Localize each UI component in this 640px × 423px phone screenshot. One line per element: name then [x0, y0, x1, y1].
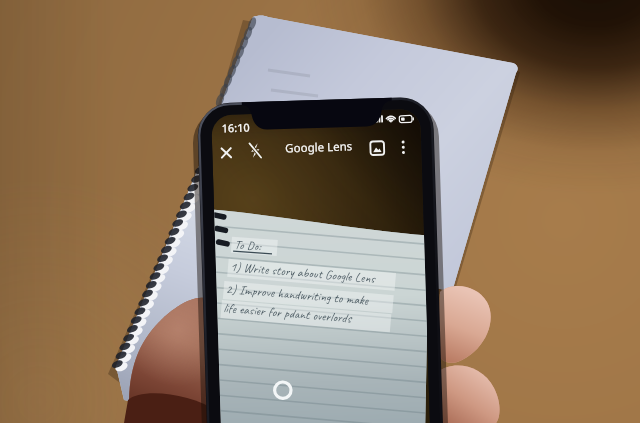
button[interactable]: More options — [396, 134, 422, 160]
button[interactable]: Flash off — [246, 134, 272, 160]
button[interactable]: Search with camera — [266, 374, 296, 404]
button[interactable]: Pick image from gallery — [366, 134, 392, 160]
button[interactable]: Close — [216, 136, 242, 162]
